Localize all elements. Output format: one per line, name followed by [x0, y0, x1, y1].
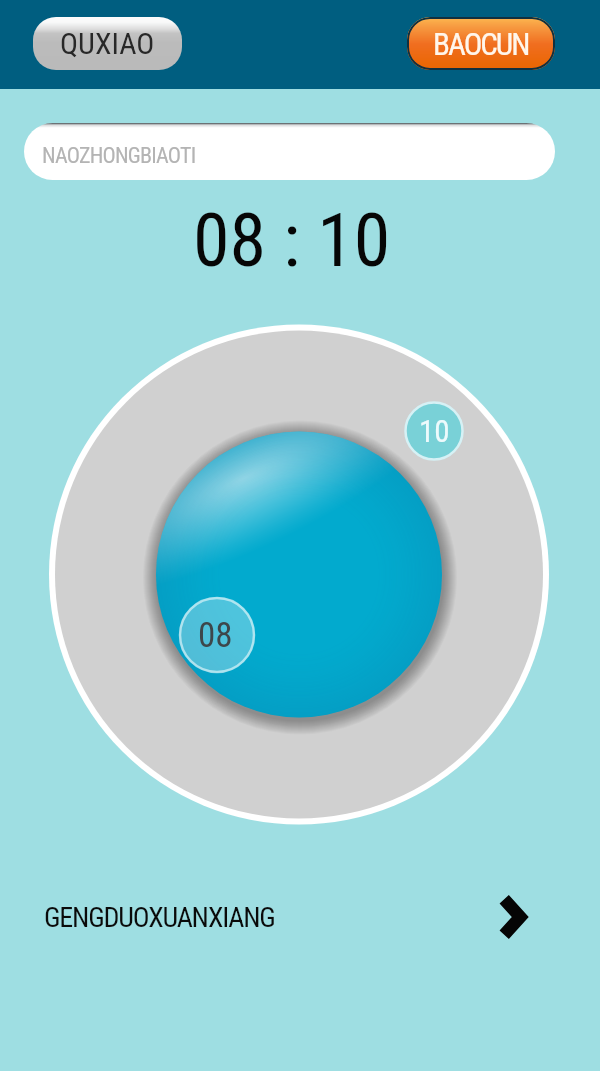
button[interactable]: BAOCUN — [407, 17, 555, 70]
staticText: GENGDUOXUANXIANG — [44, 901, 275, 934]
button[interactable]: GENGDUOXUANXIANG — [0, 878, 600, 956]
staticText: BAOCUN — [433, 26, 529, 62]
staticText: 08 — [198, 615, 233, 656]
staticText: 10 — [419, 413, 450, 449]
staticText: QUXIAO — [60, 26, 155, 61]
button[interactable]: QUXIAO — [33, 17, 182, 70]
staticText: NAOZHONGBIAOTI — [42, 143, 196, 169]
staticText: 08 : 10 — [193, 197, 391, 284]
button[interactable]: NAOZHONGBIAOTI — [24, 123, 555, 180]
other: More options — [481, 889, 537, 945]
